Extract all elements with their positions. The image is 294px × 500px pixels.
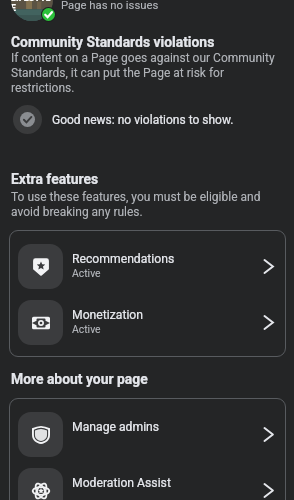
- staticText: LIFESTYLE: [11, 0, 53, 13]
- staticText: Extra features: [11, 171, 99, 187]
- button[interactable]: Monetization: [9, 294, 286, 350]
- staticText: Community Standards violations: [11, 34, 215, 50]
- button[interactable]: Manage admins: [9, 406, 286, 462]
- staticText: Monetization: [72, 308, 144, 322]
- staticText: To use these features, you must be eligi…: [11, 190, 287, 219]
- staticText: Recommendations: [72, 252, 175, 266]
- staticText: Active: [72, 267, 101, 279]
- staticText: Good news: no violations to show.: [52, 113, 234, 127]
- staticText: Active: [72, 323, 101, 335]
- staticText: Moderation Assist: [72, 476, 171, 490]
- staticText: Manage admins: [72, 420, 160, 434]
- staticText: More about your page: [11, 371, 148, 387]
- staticText: Page has no issues: [61, 0, 159, 12]
- button[interactable]: Recommendations: [9, 238, 286, 294]
- button[interactable]: Moderation Assist: [9, 462, 286, 500]
- staticText: If content on a Page goes against our Co…: [11, 51, 283, 95]
